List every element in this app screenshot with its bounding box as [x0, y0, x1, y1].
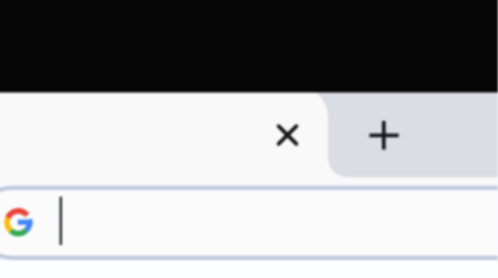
- button[interactable]: Current tab: [0, 103, 294, 188]
- button[interactable]: Close tab: [277, 125, 318, 166]
- button[interactable]: Search or type web address: [0, 198, 498, 268]
- button[interactable]: New tab: [338, 103, 498, 188]
